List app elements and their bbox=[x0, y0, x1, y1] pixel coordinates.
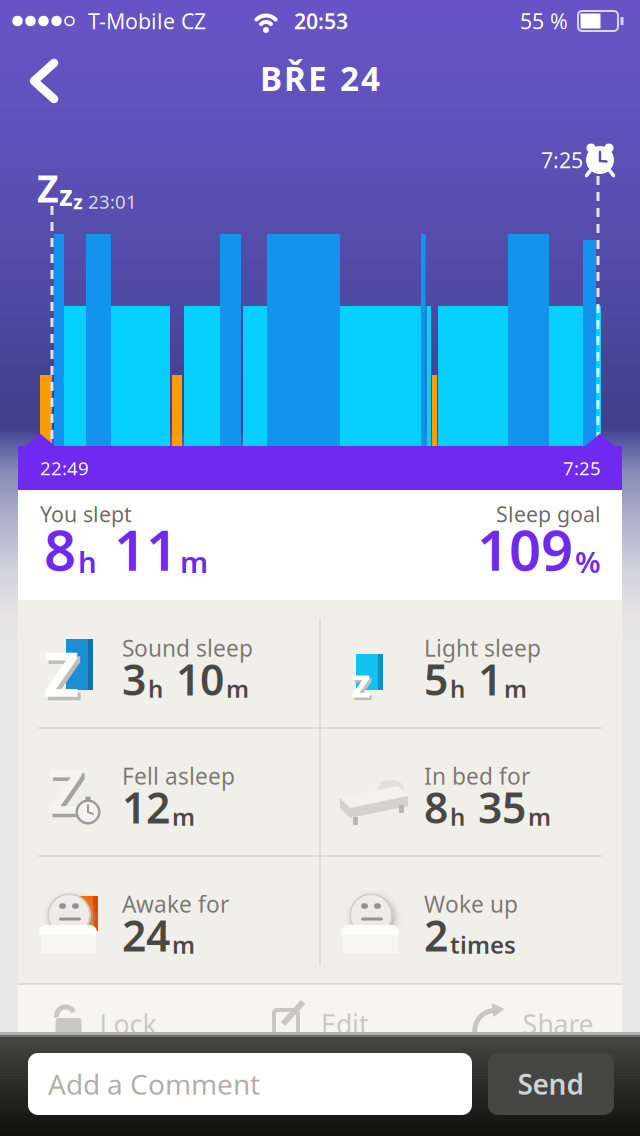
button[interactable]: Edit bbox=[271, 1006, 369, 1042]
staticText: h bbox=[450, 672, 465, 704]
staticText: Sleep goal bbox=[496, 500, 601, 528]
staticText: 35 bbox=[467, 779, 526, 835]
staticText: Add a Comment bbox=[48, 1065, 260, 1103]
staticText: 55 % bbox=[520, 7, 568, 35]
button[interactable]: Add a Comment bbox=[28, 1053, 472, 1115]
staticText: m bbox=[528, 800, 551, 832]
staticText: h bbox=[450, 800, 465, 832]
staticText: 109 bbox=[477, 512, 573, 586]
staticText: m bbox=[180, 542, 208, 581]
staticText: Send bbox=[517, 1065, 584, 1103]
staticText: BŘE 24 bbox=[260, 56, 380, 100]
staticText: % bbox=[575, 542, 601, 581]
staticText: h bbox=[148, 672, 163, 704]
staticText: Z bbox=[48, 749, 84, 831]
button[interactable]: Share bbox=[470, 1006, 593, 1042]
staticText: 3 bbox=[122, 651, 146, 707]
staticText: 7:25 bbox=[541, 146, 583, 174]
staticText: Woke up bbox=[424, 889, 518, 919]
staticText: Awake for bbox=[122, 889, 229, 919]
staticText: 20:53 bbox=[294, 7, 348, 35]
staticText: 7:25 bbox=[563, 456, 601, 480]
button[interactable]: Lock bbox=[51, 1006, 156, 1042]
staticText: 2 bbox=[424, 907, 448, 963]
staticText: Z bbox=[37, 163, 59, 213]
button[interactable] bbox=[29, 59, 59, 103]
staticText: 8 bbox=[44, 512, 76, 586]
staticText: 24 bbox=[122, 907, 170, 963]
staticText: 23:01 bbox=[83, 189, 137, 214]
staticText: In bed for bbox=[424, 761, 530, 791]
staticText: Share bbox=[522, 1006, 593, 1042]
staticText: Lock bbox=[99, 1006, 156, 1042]
staticText: Z bbox=[46, 636, 82, 717]
staticText: 10 bbox=[165, 651, 224, 707]
staticText: Fell asleep bbox=[122, 761, 235, 791]
staticText: z bbox=[73, 188, 83, 215]
staticText: 11 bbox=[99, 512, 178, 586]
staticText: 12 bbox=[122, 779, 170, 835]
staticText: Light sleep bbox=[424, 633, 541, 663]
staticText: m bbox=[172, 928, 195, 960]
staticText: 1 bbox=[467, 651, 502, 707]
staticText: Z bbox=[51, 753, 87, 834]
staticText: You slept bbox=[40, 500, 132, 528]
staticText: Edit bbox=[321, 1006, 369, 1042]
staticText: z bbox=[351, 655, 371, 708]
staticText: Sound sleep bbox=[122, 633, 253, 663]
staticText: h bbox=[78, 542, 97, 581]
staticText: times bbox=[450, 928, 516, 960]
staticText: 8 bbox=[424, 779, 448, 835]
staticText: Z bbox=[43, 632, 79, 714]
staticText: 22:49 bbox=[40, 456, 89, 480]
staticText: m bbox=[226, 672, 249, 704]
staticText: z bbox=[353, 658, 373, 711]
staticText: m bbox=[172, 800, 195, 832]
staticText: T-Mobile CZ bbox=[88, 7, 206, 35]
staticText: 5 bbox=[424, 651, 448, 707]
staticText: m bbox=[504, 672, 527, 704]
button[interactable]: Send bbox=[488, 1053, 614, 1115]
staticText: z bbox=[59, 177, 73, 214]
